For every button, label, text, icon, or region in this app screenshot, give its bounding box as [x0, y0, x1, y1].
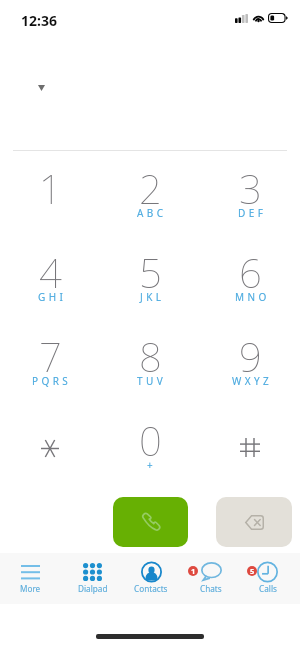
staticText: DEF — [238, 206, 267, 220]
staticText: 5 — [250, 566, 255, 576]
button[interactable] — [0, 398, 100, 482]
staticText: Calls — [259, 583, 277, 594]
staticText: + — [147, 458, 157, 472]
other: More — [21, 565, 40, 579]
staticText: 1 — [191, 566, 196, 576]
staticText: Contacts — [134, 583, 168, 594]
staticText: 0 — [139, 413, 162, 467]
staticText: TUV — [137, 374, 167, 388]
staticText: 7 — [39, 329, 62, 383]
staticText: 8 — [139, 329, 162, 383]
staticText: JKL — [140, 290, 165, 304]
other: Chats — [201, 562, 222, 581]
button[interactable]: Call — [113, 497, 188, 547]
staticText: Chats — [200, 583, 222, 594]
other: Contacts — [141, 562, 162, 582]
staticText: 3 — [239, 161, 262, 215]
staticText: GHI — [38, 290, 67, 304]
button[interactable]: Chats — [183, 553, 239, 604]
button[interactable]: 9 — [200, 314, 300, 398]
button[interactable]: Contacts — [121, 553, 181, 604]
staticText: 4 — [39, 245, 62, 299]
button[interactable]: 3 — [200, 146, 300, 230]
staticText: 12:36 — [21, 11, 57, 30]
button[interactable]: 5 — [100, 230, 200, 314]
button[interactable]: Select SIM — [29, 76, 53, 100]
button[interactable]: More — [0, 553, 61, 604]
button[interactable]: 7 — [0, 314, 100, 398]
staticText: 9 — [239, 329, 262, 383]
button[interactable] — [200, 398, 300, 482]
button[interactable]: 8 — [100, 314, 200, 398]
button[interactable]: Delete — [216, 497, 292, 547]
staticText: 2 — [139, 161, 162, 215]
other: Calls — [257, 562, 278, 582]
staticText: WXYZ — [232, 374, 273, 388]
staticText: 6 — [239, 245, 262, 299]
staticText: PQRS — [32, 374, 72, 388]
staticText: ABC — [137, 206, 167, 220]
staticText: Dialpad — [78, 583, 108, 594]
button[interactable]: 2 — [100, 146, 200, 230]
button[interactable]: Dialpad — [62, 553, 123, 604]
button[interactable]: Calls — [241, 553, 294, 604]
staticText: MNO — [235, 290, 270, 304]
other: Dialpad — [83, 563, 102, 581]
button[interactable]: 1 — [0, 146, 100, 230]
button[interactable]: 4 — [0, 230, 100, 314]
button[interactable]: 0 — [100, 398, 200, 482]
staticText: More — [20, 583, 41, 594]
staticText: 5 — [139, 245, 162, 299]
staticText: 1 — [39, 161, 62, 215]
button[interactable]: 6 — [200, 230, 300, 314]
